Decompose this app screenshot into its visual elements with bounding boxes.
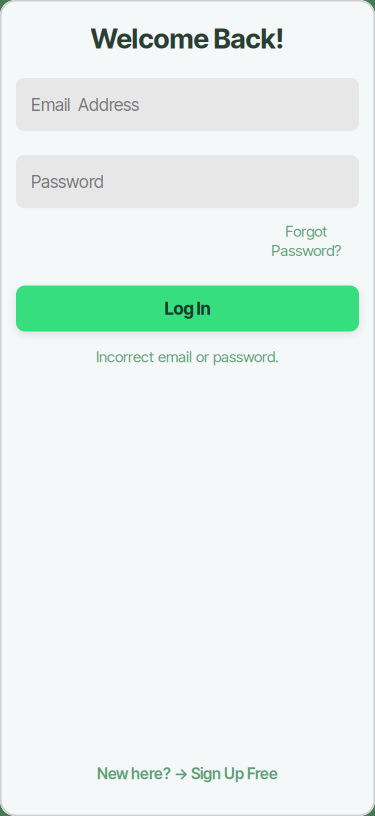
button[interactable]: Email Address: [16, 78, 359, 131]
button[interactable]: Password: [16, 155, 359, 208]
staticText: Welcome Back!: [90, 22, 284, 55]
staticText: Password: [31, 171, 104, 192]
button[interactable]: Forgot Password?: [271, 222, 359, 260]
staticText: Email Address: [31, 94, 139, 115]
button[interactable]: New here? → Sign Up Free: [97, 764, 278, 783]
button[interactable]: Log In: [16, 285, 359, 331]
staticText: Forgot Password?: [271, 222, 341, 260]
staticText: Incorrect email or password.: [96, 347, 279, 366]
staticText: New here? → Sign Up Free: [97, 764, 278, 783]
staticText: Log In: [164, 298, 210, 319]
